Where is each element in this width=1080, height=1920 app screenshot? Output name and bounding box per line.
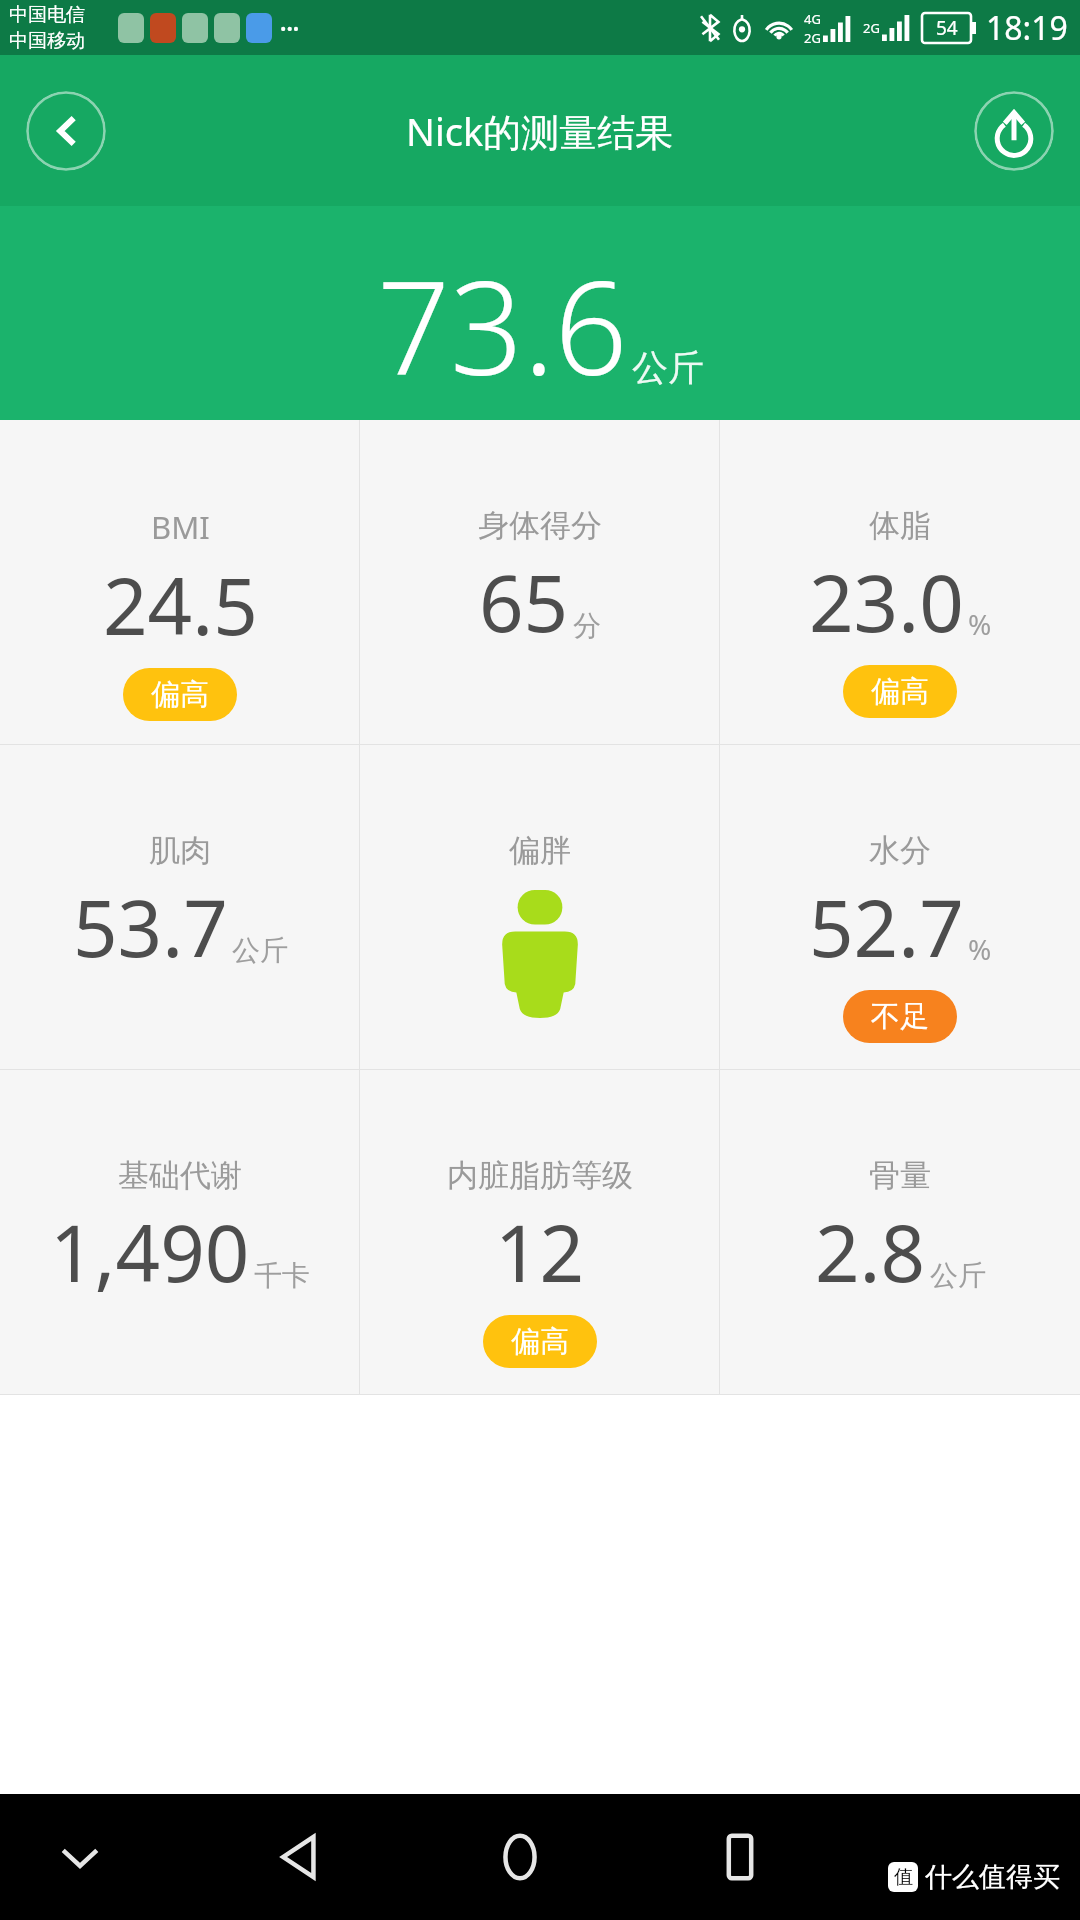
staticText: 23.0 <box>809 549 964 655</box>
staticText: 水分 <box>869 831 931 870</box>
button[interactable]: 内脏脂肪等级 <box>360 1070 720 1394</box>
staticText: 偏胖 <box>509 831 571 870</box>
button[interactable]: 水分 <box>720 745 1080 1069</box>
staticText: 65 <box>479 549 569 655</box>
button[interactable]: 体脂 <box>720 420 1080 744</box>
staticText: 偏高 <box>511 1323 569 1360</box>
staticText: 公斤 <box>632 345 704 390</box>
staticText: 体脂 <box>869 506 931 545</box>
staticText: 偏高 <box>871 673 929 710</box>
staticText: 基础代谢 <box>118 1156 242 1195</box>
staticText: 24.5 <box>103 552 258 658</box>
staticText: 18:19 <box>986 6 1068 50</box>
button[interactable]: 肌肉 <box>0 745 360 1069</box>
staticText: ••• <box>280 17 300 40</box>
staticText: 什么值得买 <box>925 1860 1060 1894</box>
button[interactable]: Home <box>470 1807 570 1907</box>
button[interactable]: 骨量 <box>720 1070 1080 1394</box>
button[interactable]: 基础代谢 <box>0 1070 360 1394</box>
staticText: 不足 <box>871 998 929 1035</box>
staticText: 2G <box>804 29 821 47</box>
button[interactable]: BMI <box>0 420 360 744</box>
staticText: 身体得分 <box>478 506 602 545</box>
staticText: 12 <box>495 1199 585 1305</box>
button[interactable]: 身体得分 <box>360 420 720 744</box>
staticText: 千卡 <box>254 1258 310 1293</box>
staticText: % <box>968 605 992 643</box>
staticText: 公斤 <box>930 1258 986 1293</box>
staticText: BMI <box>151 506 210 548</box>
staticText: 73.6 <box>377 238 628 412</box>
staticText: 53.7 <box>73 874 228 980</box>
staticText: 2G <box>863 19 880 37</box>
staticText: 4G <box>804 10 821 28</box>
staticText: 偏高 <box>151 676 209 713</box>
button[interactable]: Share <box>974 91 1054 171</box>
button[interactable]: Back <box>250 1807 350 1907</box>
staticText: % <box>968 930 992 968</box>
staticText: 公斤 <box>232 933 288 968</box>
staticText: Nick的测量结果 <box>406 105 674 157</box>
staticText: 骨量 <box>869 1156 931 1195</box>
staticText: 内脏脂肪等级 <box>447 1156 633 1195</box>
button[interactable]: Hide <box>30 1807 130 1907</box>
staticText: 54 <box>936 15 958 41</box>
staticText: 分 <box>573 608 601 643</box>
button[interactable]: Recents <box>690 1807 790 1907</box>
staticText: 中国移动 <box>9 29 85 53</box>
staticText: 1,490 <box>50 1199 250 1305</box>
button[interactable]: Back <box>26 91 106 171</box>
staticText: 2.8 <box>815 1199 926 1305</box>
staticText: 中国电信 <box>9 3 85 27</box>
staticText: 值 <box>894 1865 913 1889</box>
staticText: 52.7 <box>809 874 964 980</box>
button[interactable]: 偏胖 <box>360 745 720 1069</box>
staticText: 肌肉 <box>149 831 211 870</box>
